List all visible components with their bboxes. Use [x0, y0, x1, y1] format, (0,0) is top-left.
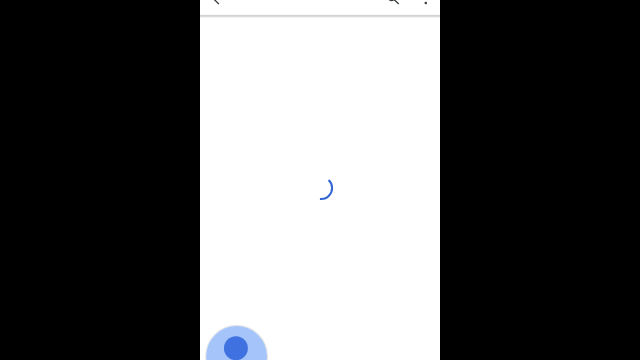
button[interactable]: Add — [200, 320, 273, 360]
